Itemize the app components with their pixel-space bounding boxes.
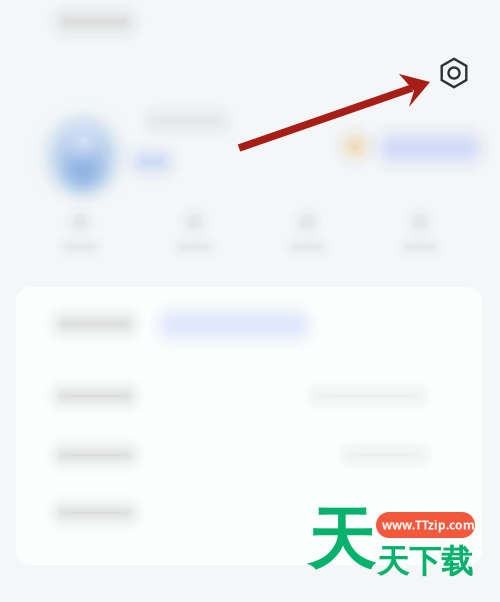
button[interactable]: Shortcut [0,0,500,602]
staticText: www.TTzip.com [382,517,475,533]
button[interactable]: Shortcut [0,0,500,602]
button[interactable]: Profile photo [9,81,149,221]
staticText: 天下载 [377,542,473,581]
button[interactable]: Shortcut [0,0,500,602]
staticText: 天 [308,499,375,581]
button[interactable]: Settings [430,49,478,97]
button[interactable]: Shortcut [0,0,500,602]
